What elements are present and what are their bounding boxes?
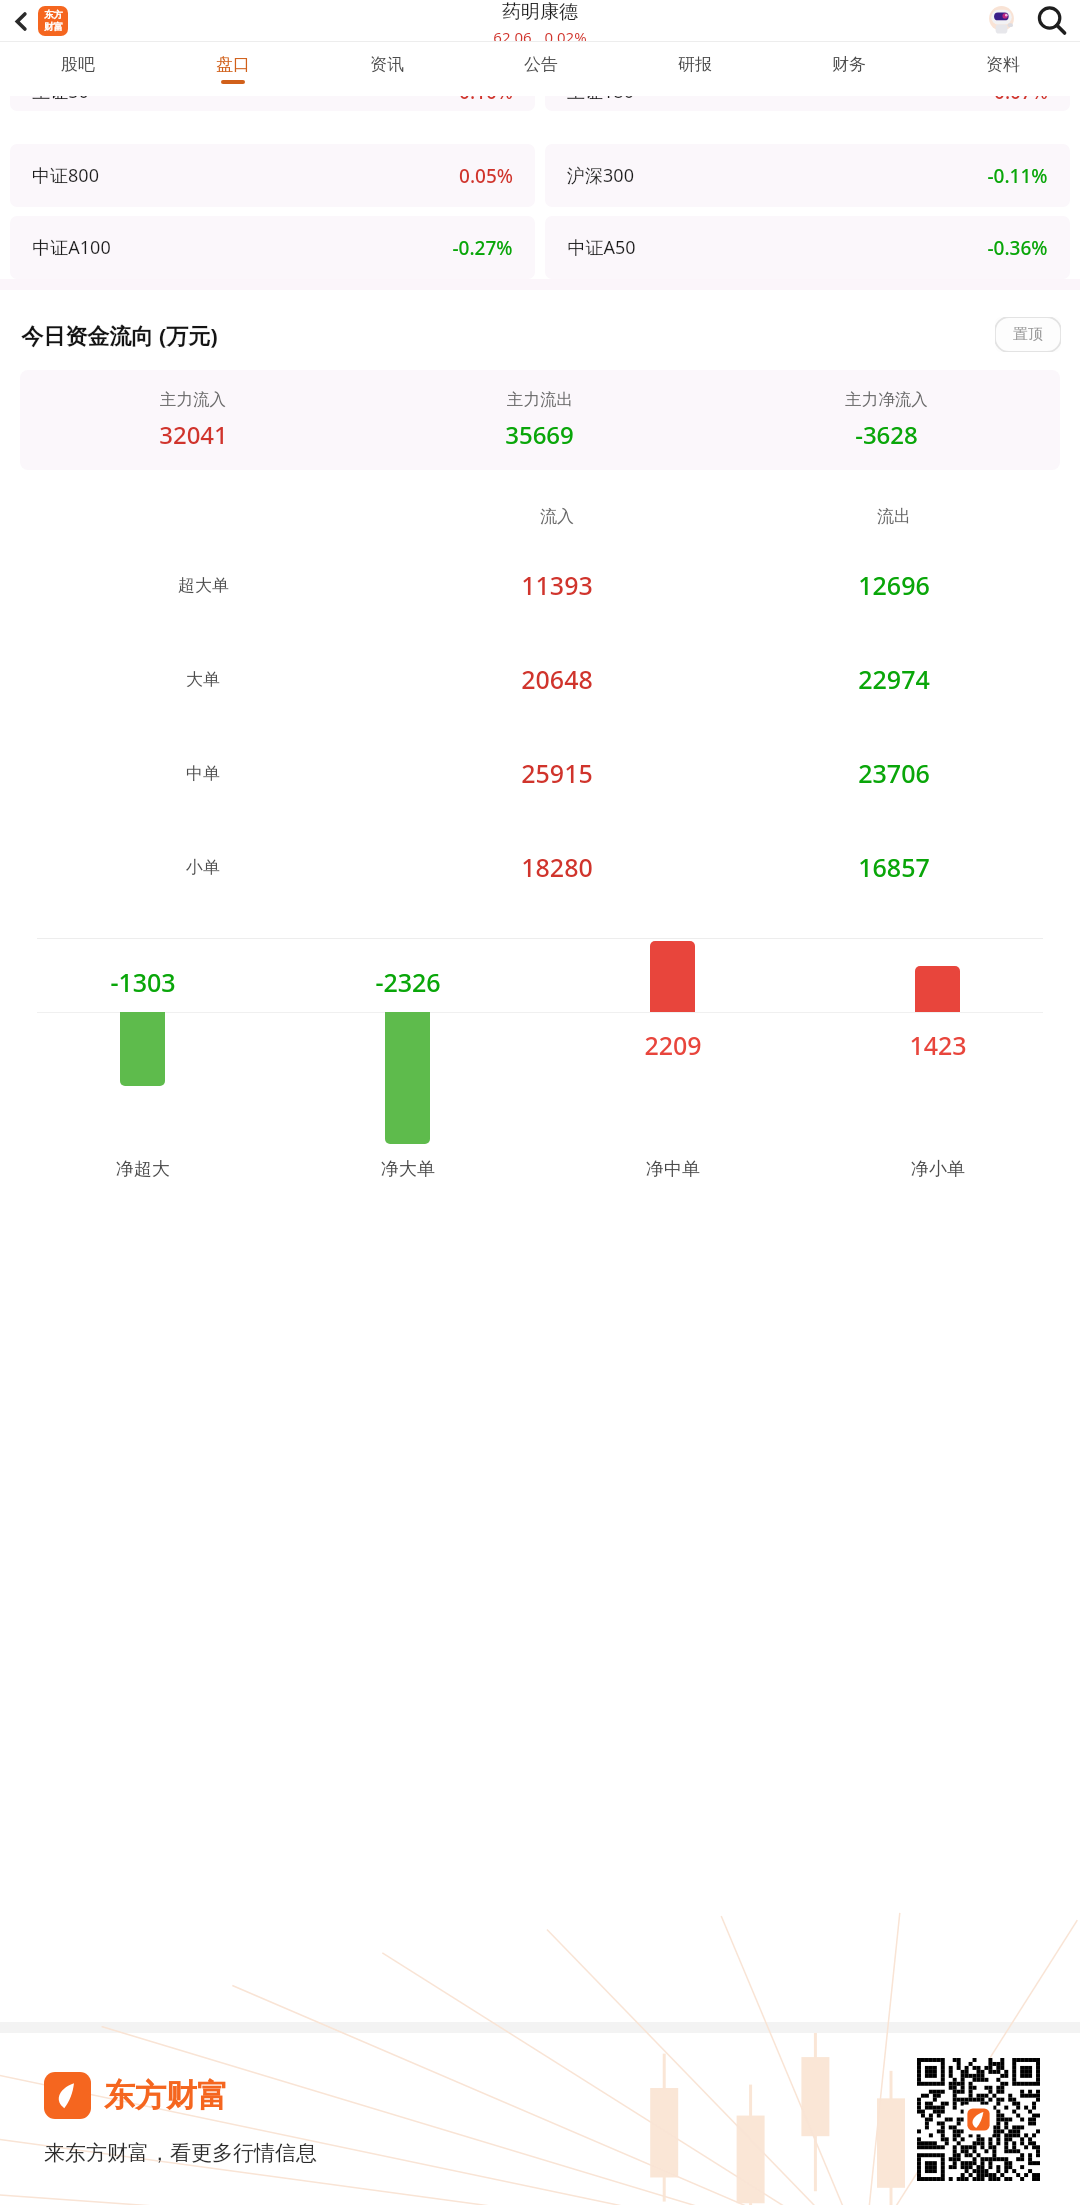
staticText: 11393 xyxy=(521,568,593,602)
staticText: 超大单 xyxy=(178,575,229,596)
staticText: 主力净流入 xyxy=(845,389,928,410)
button[interactable]: 大单 xyxy=(18,632,1062,726)
staticText: 资料 xyxy=(986,54,1020,75)
staticText: 32041 xyxy=(159,418,228,451)
button[interactable]: 资讯 xyxy=(310,42,464,96)
staticText: 0.07% xyxy=(994,96,1048,105)
staticText: 盘口 xyxy=(216,54,250,75)
button[interactable]: 上证180 xyxy=(545,96,1070,111)
staticText: 主力流出 xyxy=(507,389,573,410)
staticText: 东方 xyxy=(44,9,63,21)
staticText: 主力流入 xyxy=(160,389,226,410)
button[interactable]: 超大单 xyxy=(18,538,1062,632)
staticText: 中证800 xyxy=(32,163,99,188)
button[interactable]: 中证A50 xyxy=(545,216,1070,279)
button[interactable]: 沪深300 xyxy=(545,144,1070,207)
button[interactable]: Search xyxy=(1030,0,1074,41)
staticText: 62.06 xyxy=(493,27,532,41)
staticText: 资讯 xyxy=(370,54,404,75)
button[interactable]: QR code xyxy=(917,2058,1040,2181)
staticText: 研报 xyxy=(678,54,712,75)
staticText: 大单 xyxy=(186,669,220,690)
staticText: -0.27% xyxy=(452,235,513,261)
staticText: 财富 xyxy=(44,21,63,33)
staticText: 中证A100 xyxy=(32,235,111,260)
staticText: 流入 xyxy=(540,506,574,527)
staticText: 净超大 xyxy=(116,1158,170,1181)
staticText: -2326 xyxy=(375,965,441,999)
button[interactable]: 财务 xyxy=(772,42,926,96)
staticText: 小单 xyxy=(186,857,220,878)
button[interactable]: 资料 xyxy=(926,42,1080,96)
button[interactable]: 中证800 xyxy=(10,144,535,207)
staticText: -3628 xyxy=(855,418,918,451)
button[interactable]: Back xyxy=(4,4,38,38)
staticText: 净中单 xyxy=(646,1158,700,1181)
button[interactable]: East Money home xyxy=(38,6,68,36)
staticText: 0.02% xyxy=(544,27,587,41)
staticText: 上证50 xyxy=(32,96,89,104)
staticText: 置顶 xyxy=(1013,325,1043,344)
staticText: 公告 xyxy=(524,54,558,75)
staticText: 来东方财富，看更多行情信息 xyxy=(44,2140,317,2166)
staticText: 沪深300 xyxy=(567,163,634,188)
staticText: 23706 xyxy=(858,756,930,790)
staticText: 25915 xyxy=(521,756,593,790)
staticText: -0.36% xyxy=(987,235,1048,261)
staticText: 0.05% xyxy=(459,163,513,189)
staticText: 药明康德 xyxy=(502,0,578,24)
button[interactable]: 小单 xyxy=(18,820,1062,914)
staticText: 22974 xyxy=(858,662,930,696)
staticText: 东方财富 xyxy=(104,2076,228,2115)
staticText: 1423 xyxy=(909,1028,967,1062)
staticText: 流出 xyxy=(877,506,911,527)
staticText: 净小单 xyxy=(911,1158,965,1181)
button[interactable]: 上证50 xyxy=(10,96,535,111)
button[interactable]: AI assistant xyxy=(982,2,1020,40)
button[interactable]: 中单 xyxy=(18,726,1062,820)
staticText: -0.11% xyxy=(987,163,1048,189)
staticText: 今日资金流向 (万元) xyxy=(21,320,218,350)
staticText: 中单 xyxy=(186,763,220,784)
staticText: -1303 xyxy=(110,965,176,999)
staticText: 20648 xyxy=(521,662,593,696)
staticText: 股吧 xyxy=(61,54,95,75)
button[interactable]: 研报 xyxy=(618,42,772,96)
button[interactable]: 盘口 xyxy=(155,42,310,96)
button[interactable]: 股吧 xyxy=(0,42,155,96)
staticText: 35669 xyxy=(505,418,574,451)
staticText: 2209 xyxy=(644,1028,702,1062)
staticText: 净大单 xyxy=(381,1158,435,1181)
button[interactable]: 公告 xyxy=(464,42,618,96)
staticText: 中证A50 xyxy=(567,235,636,260)
staticText: 18280 xyxy=(521,850,593,884)
staticText: 上证180 xyxy=(567,96,634,104)
button[interactable]: 主力流入 xyxy=(20,370,1060,470)
staticText: 0.10% xyxy=(459,96,513,105)
staticText: 16857 xyxy=(858,850,930,884)
staticText: 12696 xyxy=(858,568,930,602)
button[interactable]: 中证A100 xyxy=(10,216,535,279)
button[interactable]: 置顶 xyxy=(995,317,1061,352)
staticText: 财务 xyxy=(832,54,866,75)
